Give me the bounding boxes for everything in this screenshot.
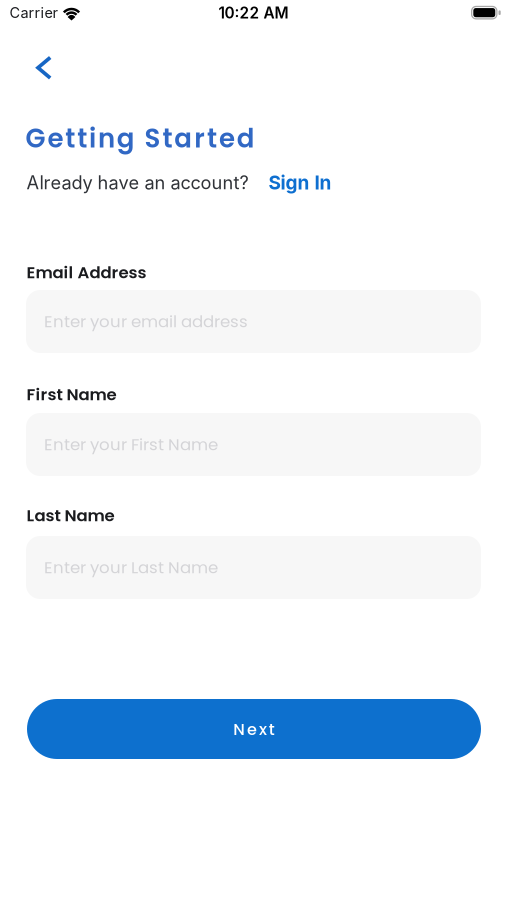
- staticText: Already have an account?: [26, 172, 248, 194]
- staticText: Enter your First Name: [44, 433, 218, 456]
- staticText: Enter your Last Name: [44, 556, 218, 579]
- staticText: Last Name: [26, 504, 114, 527]
- button[interactable]: Enter your Last Name: [26, 536, 481, 599]
- button[interactable]: Enter your First Name: [26, 413, 481, 476]
- button[interactable]: Next: [27, 699, 481, 759]
- staticText: Getting Started: [25, 120, 255, 157]
- staticText: Enter your email address: [44, 310, 248, 333]
- staticText: 10:22 AM: [218, 4, 288, 22]
- staticText: Next: [233, 718, 275, 741]
- button[interactable]: Enter your email address: [26, 290, 481, 353]
- staticText: Sign In: [268, 171, 331, 194]
- staticText: Email Address: [26, 261, 146, 284]
- button[interactable]: Back: [28, 47, 60, 88]
- staticText: Carrier: [9, 4, 57, 21]
- button[interactable]: Sign In: [268, 171, 331, 194]
- staticText: First Name: [26, 383, 116, 406]
